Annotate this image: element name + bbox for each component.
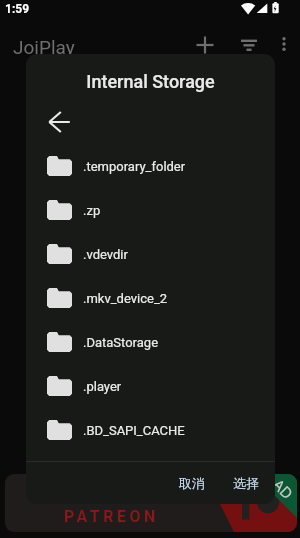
staticText: .player <box>83 379 122 394</box>
staticText: .BD_SAPI_CACHE <box>83 423 185 438</box>
button[interactable]: 选择 <box>221 465 271 501</box>
button[interactable]: Add <box>190 30 220 60</box>
staticText: .temporary_folder <box>83 159 186 174</box>
staticText: .vdevdir <box>83 247 128 262</box>
button[interactable]: .mkv_device_2 <box>26 276 275 320</box>
button[interactable]: .BD_SAPI_CACHE <box>26 408 275 452</box>
button[interactable]: .DataStorage <box>26 320 275 364</box>
staticText: 取消 <box>179 475 205 491</box>
button[interactable]: .vdevdir <box>26 232 275 276</box>
button[interactable]: More options <box>270 30 298 58</box>
button[interactable]: 取消 <box>167 465 217 501</box>
button[interactable]: .zp <box>26 188 275 232</box>
button[interactable]: .temporary_folder <box>26 144 275 188</box>
button[interactable]: Filter <box>234 30 264 60</box>
staticText: JoiPlay <box>13 36 75 58</box>
staticText: PATREON <box>64 507 159 526</box>
staticText: 1:59 <box>5 2 30 16</box>
staticText: Internal Storage <box>26 71 275 92</box>
staticText: AD <box>269 474 297 503</box>
button[interactable]: .player <box>26 364 275 408</box>
staticText: .mkv_device_2 <box>83 291 168 306</box>
staticText: .zp <box>83 203 101 218</box>
button[interactable]: Back <box>44 106 76 138</box>
staticText: 选择 <box>233 475 259 491</box>
button[interactable]: Advertisement <box>5 474 297 532</box>
staticText: .DataStorage <box>83 335 159 350</box>
